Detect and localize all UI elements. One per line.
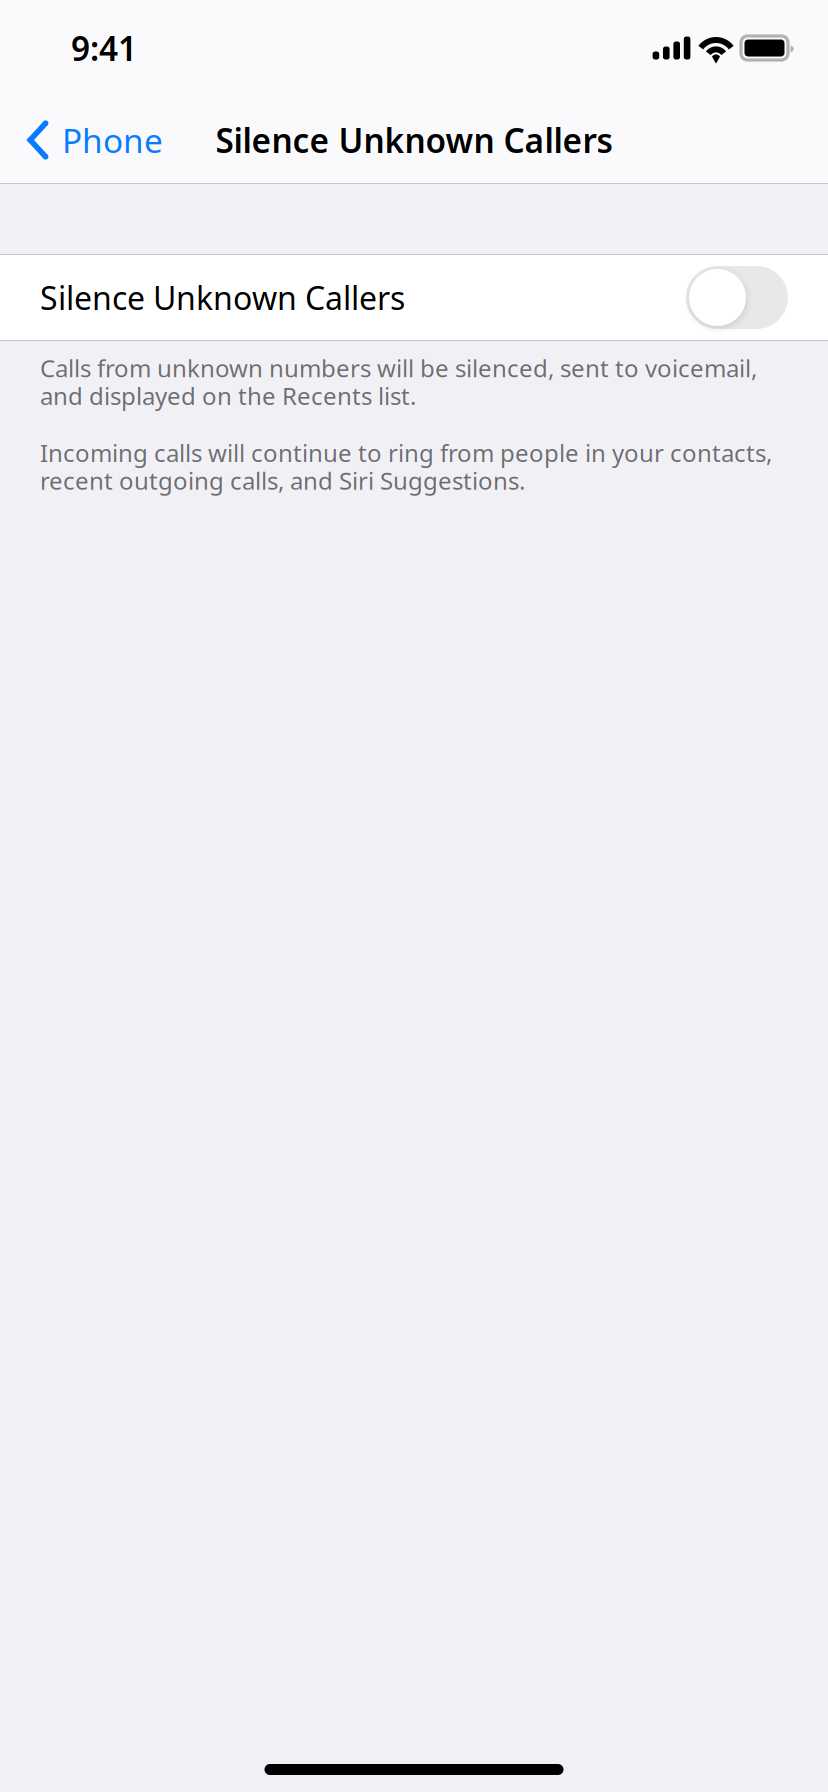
button[interactable]: Back to Phone: [0, 96, 179, 184]
staticText: Calls from unknown numbers will be silen…: [40, 352, 757, 412]
staticText: Silence Unknown Callers: [40, 276, 405, 319]
staticText: Phone: [62, 118, 163, 162]
staticText: Silence Unknown Callers: [215, 118, 612, 162]
staticText: 9:41: [71, 26, 137, 70]
button[interactable]: Silence Unknown Callers: [0, 254, 828, 341]
staticText: Incoming calls will continue to ring fro…: [40, 437, 772, 496]
